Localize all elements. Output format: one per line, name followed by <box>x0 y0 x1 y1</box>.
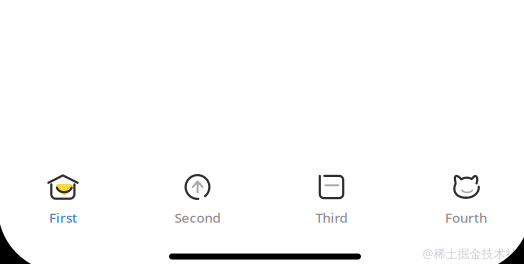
staticText: Third <box>315 209 347 226</box>
button[interactable]: First <box>4 168 122 230</box>
button[interactable]: Third <box>272 168 390 230</box>
button[interactable]: Fourth <box>407 168 524 230</box>
staticText: @稀土掘金技术社区 <box>422 245 524 261</box>
button[interactable]: Second <box>138 168 256 230</box>
staticText: Second <box>174 209 220 226</box>
staticText: First <box>49 209 77 226</box>
staticText: Fourth <box>445 209 487 226</box>
